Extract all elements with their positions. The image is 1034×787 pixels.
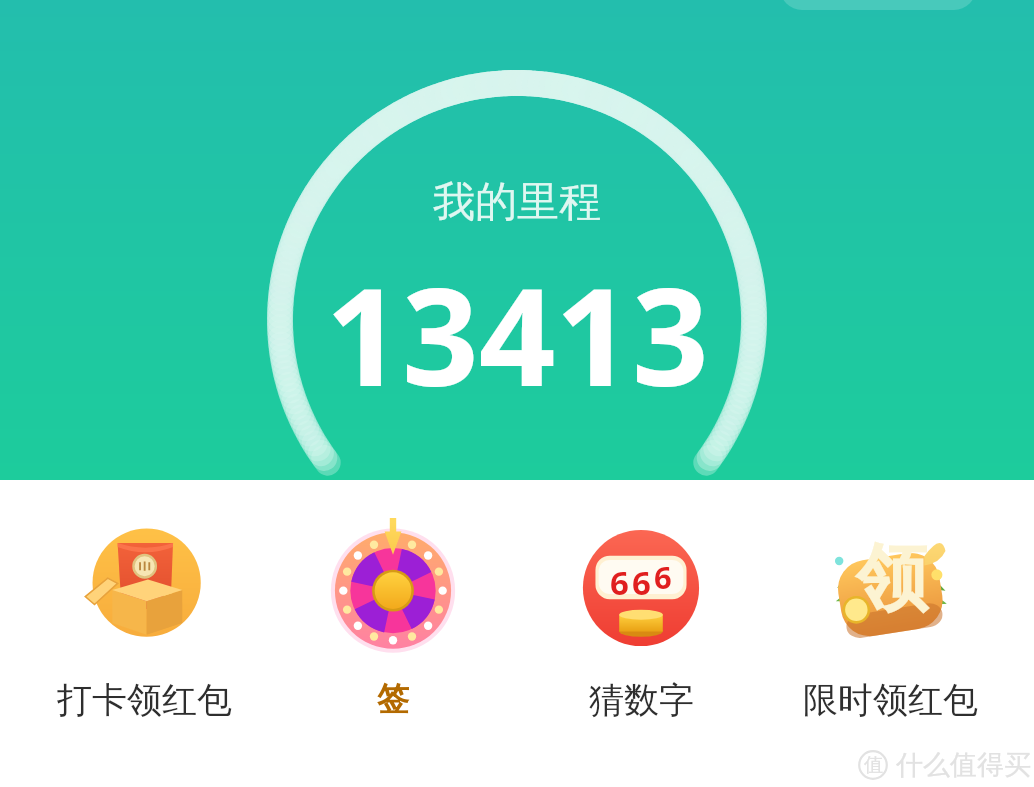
staticText: 限时领红包 xyxy=(803,678,978,722)
staticText: 13413 xyxy=(325,243,709,426)
button[interactable]: 领 xyxy=(785,480,995,722)
staticText: 6 xyxy=(654,556,672,598)
staticText: 领 xyxy=(856,534,928,625)
staticText: 6 xyxy=(632,560,651,605)
button[interactable]: 打卡领红包 xyxy=(39,480,249,722)
button[interactable]: Rules xyxy=(780,0,976,10)
button[interactable]: 签 xyxy=(288,480,498,740)
button[interactable]: 6 xyxy=(536,480,746,722)
staticText: 打卡领红包 xyxy=(57,678,232,722)
staticText: 值 xyxy=(864,753,883,777)
staticText: 猜数字 xyxy=(589,678,694,722)
staticText: 签 xyxy=(377,679,409,719)
staticText: 什么值得买 xyxy=(896,748,1031,782)
staticText: 6 xyxy=(610,560,629,605)
staticText: 我的里程 xyxy=(433,176,601,229)
